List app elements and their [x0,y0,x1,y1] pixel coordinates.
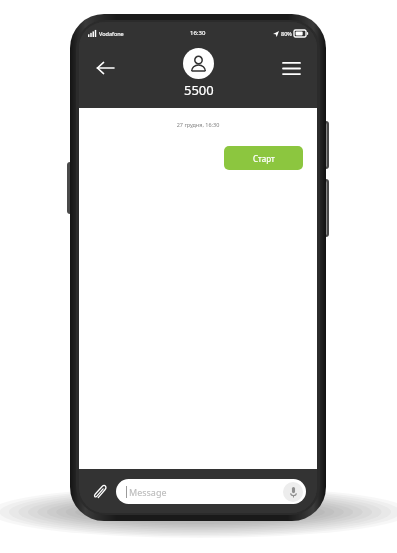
staticText: Message [129,486,167,498]
staticText: Vodafone [99,30,124,37]
staticText: 27 грудня, 16:30 [79,121,317,128]
staticText: 16:30 [190,29,206,37]
button[interactable]: Voice message [283,482,303,502]
staticText: 80% [281,30,292,37]
button[interactable]: Contact avatar [183,48,214,79]
button[interactable]: Back [87,50,123,86]
button[interactable]: Attach file [88,481,110,503]
button[interactable]: Старт [224,146,303,170]
staticText: Старт [253,153,275,164]
button[interactable]: Menu [273,50,309,86]
staticText: 5500 [184,81,214,99]
button[interactable]: Message [116,479,306,504]
